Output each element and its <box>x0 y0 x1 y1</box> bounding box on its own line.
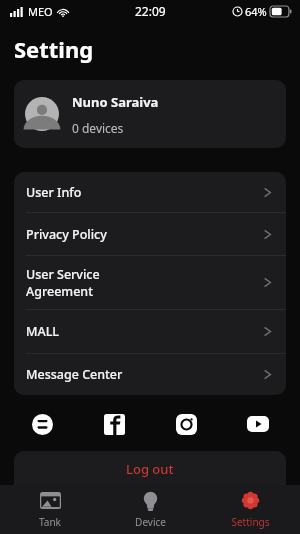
staticText: Nuno Saraiva <box>72 93 159 111</box>
button[interactable]: Instagram <box>170 408 202 440</box>
staticText: Log out <box>126 460 174 478</box>
staticText: Tank <box>39 515 61 529</box>
button[interactable]: User Info <box>14 172 286 212</box>
button[interactable]: Facebook <box>98 408 130 440</box>
button[interactable]: Privacy Policy <box>14 213 286 255</box>
button[interactable]: Log out <box>14 451 286 497</box>
staticText: User Service Agreement <box>26 266 263 299</box>
staticText: MEO <box>28 4 53 19</box>
staticText: 22:09 <box>135 3 166 19</box>
button[interactable]: Message Center <box>14 354 286 395</box>
staticText: Message Center <box>26 366 263 383</box>
button[interactable]: Settings <box>200 485 300 534</box>
button[interactable]: Device <box>100 485 200 534</box>
staticText: Setting <box>14 34 94 64</box>
button[interactable]: User Service Agreement <box>14 256 286 309</box>
button[interactable]: Nuno Saraiva <box>14 80 286 148</box>
button[interactable]: Tank <box>0 485 100 534</box>
staticText: Settings <box>231 515 270 529</box>
button[interactable]: YouTube <box>242 408 274 440</box>
button[interactable]: Blog <box>26 408 58 440</box>
staticText: Device <box>135 515 166 529</box>
staticText: 0 devices <box>72 120 124 136</box>
staticText: MALL <box>26 323 263 340</box>
staticText: Privacy Policy <box>26 226 263 243</box>
button[interactable]: MALL <box>14 310 286 353</box>
staticText: User Info <box>26 184 263 201</box>
staticText: 64% <box>245 4 267 19</box>
